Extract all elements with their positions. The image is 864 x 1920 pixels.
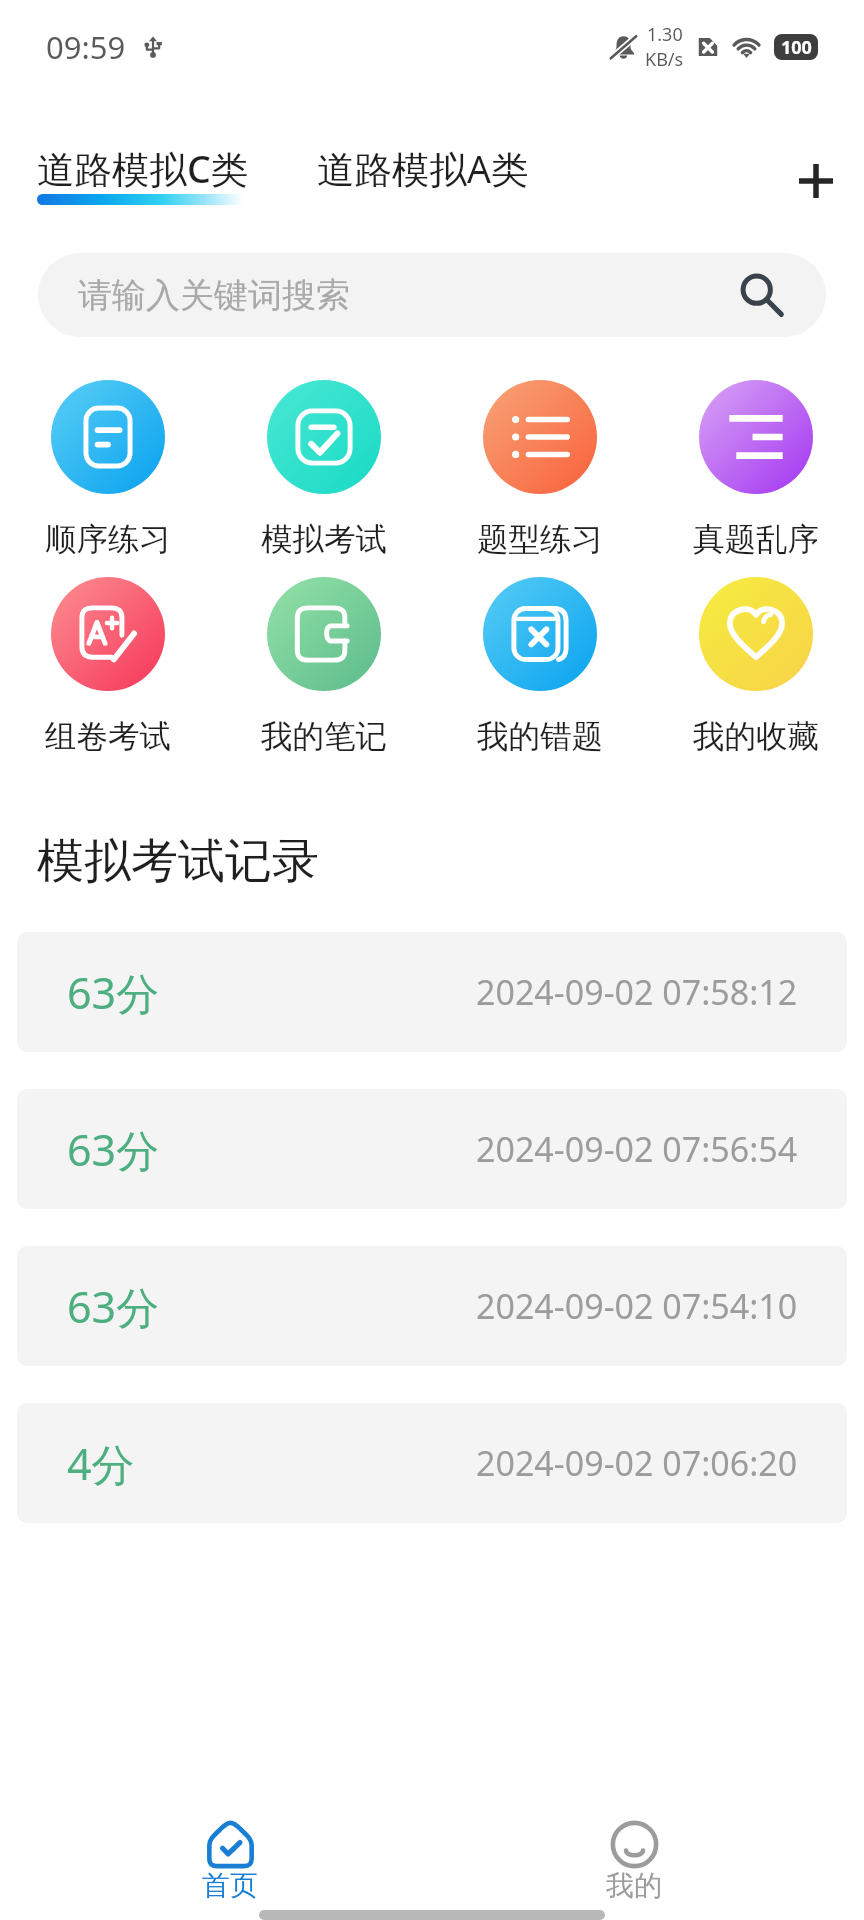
button[interactable]: 道路模拟A类 bbox=[317, 143, 529, 194]
button[interactable]: 我的笔记 bbox=[216, 577, 432, 757]
staticText: 09:59 bbox=[46, 26, 126, 68]
button[interactable]: Add bbox=[780, 145, 852, 217]
staticText: 真题乱序 bbox=[693, 520, 819, 560]
staticText: 模拟考试记录 bbox=[37, 832, 319, 891]
staticText: 2024-09-02 07:06:20 bbox=[476, 1440, 798, 1486]
button[interactable]: 顺序练习 bbox=[0, 380, 216, 560]
button[interactable]: 我的错题 bbox=[432, 577, 648, 757]
staticText: 道路模拟C类 bbox=[37, 143, 249, 194]
staticText: 题型练习 bbox=[477, 520, 603, 560]
staticText: 2024-09-02 07:58:12 bbox=[476, 969, 798, 1015]
button[interactable]: 4分 bbox=[17, 1403, 847, 1523]
staticText: 我的收藏 bbox=[693, 717, 819, 757]
staticText: 顺序练习 bbox=[45, 520, 171, 560]
staticText: 请输入关键词搜索 bbox=[78, 274, 350, 317]
staticText: 63分 bbox=[67, 1120, 160, 1179]
staticText: 组卷考试 bbox=[45, 717, 171, 757]
staticText: 道路模拟A类 bbox=[317, 143, 529, 194]
staticText: 63分 bbox=[67, 963, 160, 1022]
staticText: 我的 bbox=[606, 1868, 662, 1903]
staticText: 100 bbox=[781, 35, 812, 60]
staticText: 2024-09-02 07:54:10 bbox=[476, 1283, 798, 1329]
button[interactable]: 我的收藏 bbox=[648, 577, 864, 757]
button[interactable]: 模拟考试 bbox=[216, 380, 432, 560]
button[interactable]: 我的 bbox=[580, 1815, 688, 1909]
button[interactable]: 首页 bbox=[176, 1815, 284, 1909]
staticText: 首页 bbox=[202, 1868, 258, 1903]
staticText: 我的错题 bbox=[477, 717, 603, 757]
button[interactable]: 题型练习 bbox=[432, 380, 648, 560]
staticText: 我的笔记 bbox=[261, 717, 387, 757]
button[interactable]: 真题乱序 bbox=[648, 380, 864, 560]
button[interactable]: Search bbox=[720, 253, 804, 337]
staticText: 4分 bbox=[67, 1434, 135, 1493]
staticText: 模拟考试 bbox=[261, 520, 387, 560]
staticText: 63分 bbox=[67, 1277, 160, 1336]
button[interactable]: 请输入关键词搜索 bbox=[38, 253, 826, 337]
staticText: KB/s bbox=[645, 47, 684, 72]
staticText: 2024-09-02 07:56:54 bbox=[476, 1126, 798, 1172]
button[interactable]: 63分 bbox=[17, 1089, 847, 1209]
button[interactable]: 63分 bbox=[17, 1246, 847, 1366]
button[interactable]: 道路模拟C类 bbox=[37, 143, 249, 205]
staticText: 1.30 bbox=[647, 22, 683, 47]
button[interactable]: 组卷考试 bbox=[0, 577, 216, 757]
button[interactable]: 63分 bbox=[17, 932, 847, 1052]
